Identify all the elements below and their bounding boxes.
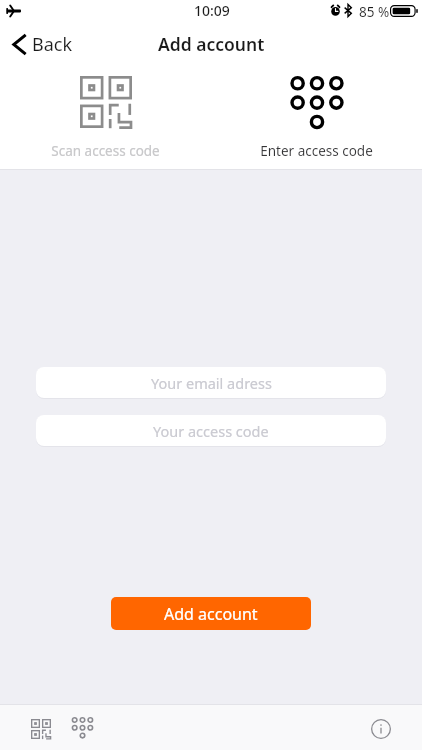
staticText: Your access code <box>153 421 269 441</box>
button[interactable]: Scan access code <box>25 712 57 744</box>
button[interactable]: Info <box>365 712 397 744</box>
staticText: Enter access code <box>260 142 373 160</box>
button[interactable]: Add account <box>111 597 311 630</box>
staticText: Back <box>32 32 73 57</box>
button[interactable]: Back <box>8 28 77 61</box>
button[interactable]: Your access code <box>36 415 386 446</box>
staticText: 10:09 <box>194 1 230 20</box>
staticText: Your email adress <box>151 373 272 393</box>
button[interactable]: Enter access code <box>66 712 98 744</box>
button[interactable]: Enter access code <box>211 62 422 160</box>
button[interactable]: Scan access code <box>0 62 211 160</box>
staticText: Add account <box>164 603 258 625</box>
button[interactable]: Your email adress <box>36 367 386 398</box>
staticText: Scan access code <box>51 142 160 160</box>
staticText: 85 % <box>359 3 390 21</box>
staticText: Add account <box>158 32 265 56</box>
